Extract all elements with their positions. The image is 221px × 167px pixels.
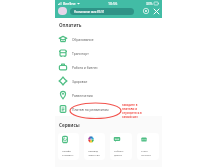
- button[interactable]: Платеж по реквизитам: [55, 102, 162, 116]
- staticText: 10:56: [108, 1, 118, 6]
- button[interactable]: Образование: [55, 32, 162, 46]
- staticText: спускаетесь в: [122, 111, 142, 115]
- button[interactable]: Close: [152, 7, 160, 15]
- button[interactable]: Здоровье: [55, 74, 162, 88]
- button[interactable]: Работа и бизнес: [55, 60, 162, 74]
- staticText: Собрать: [114, 149, 124, 152]
- button[interactable]: Транспорт: [55, 46, 162, 60]
- staticText: самый низ: [122, 115, 138, 119]
- staticText: 33%: [146, 2, 153, 6]
- button[interactable]: Собрать: [110, 133, 132, 160]
- staticText: Работа и бизнес: [72, 65, 98, 69]
- staticText: Транспорт: [72, 51, 89, 55]
- staticText: Здоровье: [72, 79, 88, 83]
- staticText: Образование: [72, 37, 94, 41]
- staticText: заходите в: [122, 103, 138, 107]
- staticText: Платеж по реквизитам: [72, 107, 109, 111]
- button[interactable]: Развлечения: [55, 88, 162, 102]
- staticText: Счета: [141, 149, 148, 152]
- staticText: Оплатить: [59, 22, 82, 28]
- staticText: Перевод: [88, 149, 99, 152]
- button[interactable]: Тарифы: [58, 133, 79, 160]
- staticText: через СБП: [88, 153, 101, 156]
- staticText: деньги: [114, 153, 123, 156]
- staticText: Сервисы: [59, 122, 80, 128]
- staticText: Тарифы: [62, 149, 72, 152]
- button[interactable]: Наскальное имя 89-91: [70, 8, 134, 15]
- staticText: Beeline: [63, 1, 76, 6]
- staticText: Наскальное имя 89-91: [74, 10, 105, 14]
- staticText: на итоге: [141, 153, 151, 156]
- button[interactable]: Profile: [58, 7, 67, 15]
- button[interactable]: Счета: [137, 133, 159, 160]
- button[interactable]: Support: [142, 7, 150, 15]
- staticText: Развлечения: [72, 93, 93, 97]
- staticText: и лимиты: [62, 153, 74, 156]
- button[interactable]: Перевод: [84, 133, 105, 160]
- staticText: платежи и: [122, 107, 138, 111]
